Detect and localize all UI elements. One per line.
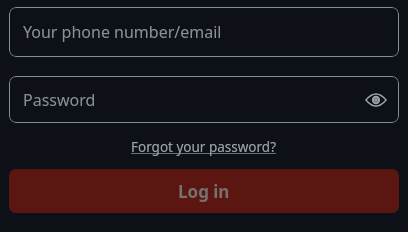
staticText: Password <box>23 89 363 111</box>
staticText: Forgot your password? <box>131 138 277 156</box>
button[interactable]: Show password <box>363 87 389 113</box>
button[interactable]: Password <box>9 76 399 123</box>
staticText: Your phone number/email <box>23 21 222 43</box>
button[interactable]: Log in <box>9 169 399 213</box>
staticText: Log in <box>178 180 230 203</box>
button[interactable]: Your phone number/email <box>9 7 399 57</box>
button[interactable]: Forgot your password? <box>127 136 281 158</box>
